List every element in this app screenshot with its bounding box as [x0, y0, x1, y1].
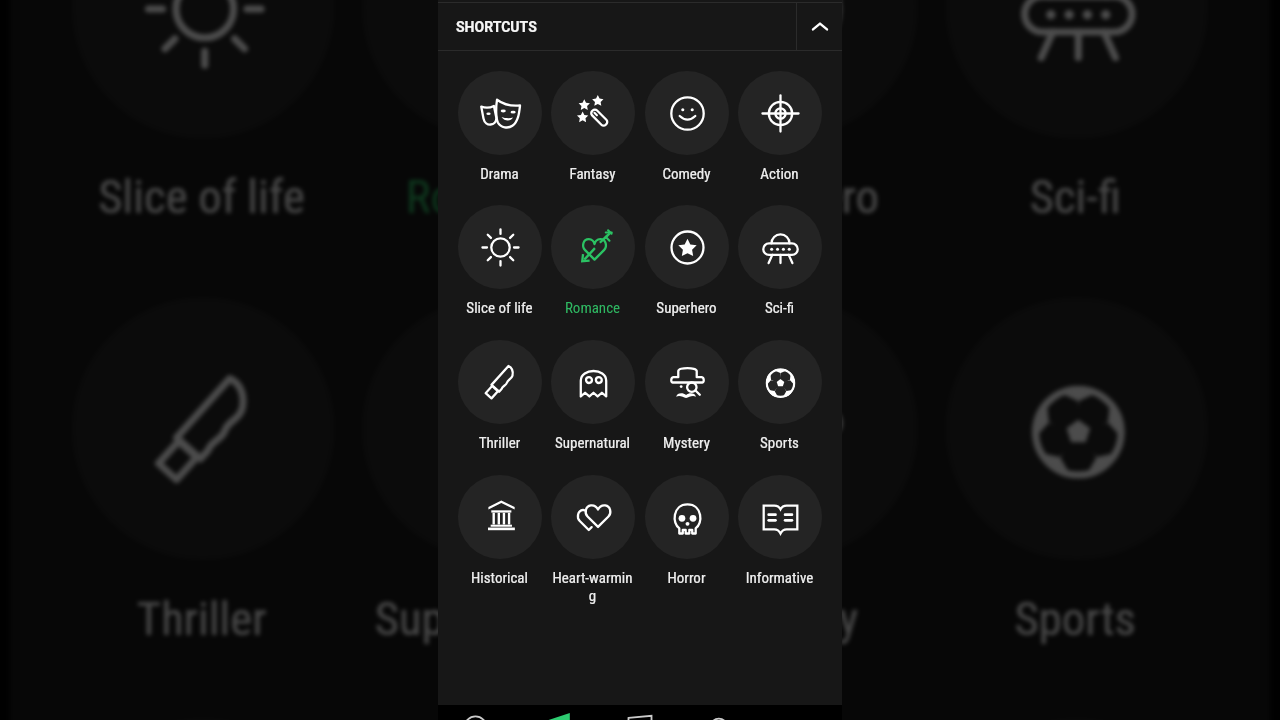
button[interactable]: Horror	[640, 719, 930, 720]
button[interactable]: Superhero	[640, 205, 733, 317]
staticText: Slice of life	[453, 299, 546, 317]
button[interactable]: Romance	[347, 0, 637, 226]
staticText: Thriller	[453, 434, 546, 452]
staticText: Horror	[640, 569, 733, 587]
staticText: Sports	[930, 591, 1220, 647]
staticText: Sci-fi	[733, 299, 826, 317]
staticText: Drama	[453, 165, 546, 183]
button[interactable]: Comedy	[640, 71, 733, 183]
staticText: Sci-fi	[930, 170, 1220, 226]
button[interactable]: Collapse shortcuts	[797, 3, 842, 50]
button[interactable]: Supernatural	[347, 298, 637, 647]
staticText: Romance	[546, 299, 639, 317]
button[interactable]: Sci-fi	[930, 0, 1220, 226]
staticText: Slice of life	[57, 170, 347, 226]
button[interactable]: Library	[599, 705, 680, 720]
button[interactable]: Informative	[733, 475, 826, 587]
button[interactable]: Sports	[930, 298, 1220, 647]
staticText: Informative	[733, 569, 826, 587]
staticText: Thriller	[57, 591, 347, 647]
staticText: Superhero	[640, 170, 930, 226]
staticText: Comedy	[640, 165, 733, 183]
staticText: Supernatural	[347, 591, 637, 647]
staticText: Romance	[347, 170, 637, 226]
button[interactable]: Sports	[733, 340, 826, 452]
button[interactable]: Slice of life	[57, 0, 347, 226]
button[interactable]: Drama	[453, 71, 546, 183]
staticText: Fantasy	[546, 165, 639, 183]
button[interactable]: Home	[438, 705, 518, 720]
button[interactable]: Horror	[640, 475, 733, 587]
button[interactable]: Historical	[453, 475, 546, 587]
button[interactable]: Action	[733, 71, 826, 183]
button[interactable]: SHORTCUTS	[438, 3, 796, 50]
button[interactable]: Mystery	[640, 340, 733, 452]
button[interactable]: Fantasy	[546, 71, 639, 183]
button[interactable]: Thriller	[453, 340, 546, 452]
button[interactable]: Romance	[546, 205, 639, 317]
button[interactable]: Heart-warmin g	[546, 475, 639, 605]
staticText: SHORTCUTS	[456, 19, 537, 35]
button[interactable]: Play	[518, 705, 599, 720]
button[interactable]: Sci-fi	[733, 205, 826, 317]
staticText: Mystery	[640, 591, 930, 647]
button[interactable]: Supernatural	[546, 340, 639, 452]
button[interactable]: Search	[680, 705, 761, 720]
staticText: Mystery	[640, 434, 733, 452]
staticText: Supernatural	[546, 434, 639, 452]
staticText: Sports	[733, 434, 826, 452]
button[interactable]: Thriller	[57, 298, 347, 647]
button[interactable]: Heart-warmin g	[347, 719, 637, 720]
staticText: Action	[733, 165, 826, 183]
staticText: Superhero	[640, 299, 733, 317]
staticText: Historical	[453, 569, 546, 587]
staticText: Heart-warmin g	[546, 569, 639, 605]
button[interactable]: Slice of life	[453, 205, 546, 317]
button[interactable]: Superhero	[640, 0, 930, 226]
button[interactable]: Mystery	[640, 298, 930, 647]
